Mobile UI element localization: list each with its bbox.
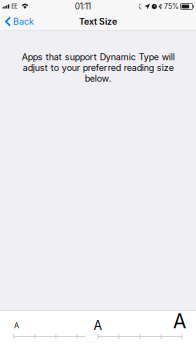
staticText: A bbox=[93, 318, 102, 333]
staticText: Back bbox=[13, 16, 34, 27]
staticText: 75% bbox=[164, 2, 179, 11]
button[interactable]: Back bbox=[0, 13, 38, 29]
staticText: Text Size bbox=[79, 16, 117, 27]
staticText: EE bbox=[11, 3, 17, 10]
staticText: Apps that support Dynamic Type will adju… bbox=[21, 51, 174, 84]
staticText: A bbox=[14, 321, 19, 330]
staticText: 01:11 bbox=[75, 1, 91, 11]
staticText: A bbox=[173, 310, 186, 333]
